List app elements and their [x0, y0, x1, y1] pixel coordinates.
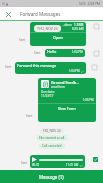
- staticText: Eko started a call: [39, 136, 65, 140]
- button[interactable]: Forward this message: [15, 62, 86, 74]
- staticText: Sent: [26, 114, 33, 118]
- staticText: View Form: [58, 106, 76, 111]
- staticText: 1.9 KB: [74, 23, 84, 27]
- staticText: Call canceled: [42, 144, 62, 148]
- staticText: …docx: [62, 23, 72, 27]
- staticText: General Feedb…: [51, 80, 79, 85]
- staticText: Sent: [19, 38, 26, 42]
- staticText: Due date:: [41, 90, 55, 94]
- button[interactable]: Select message: [93, 157, 98, 162]
- button[interactable]: Select message: [94, 51, 99, 56]
- staticText: 00:32: [32, 163, 40, 167]
- staticText: Sent: [5, 65, 12, 69]
- staticText: FRI, NOV 24: [43, 129, 61, 133]
- staticText: 1:04 PM: [72, 50, 83, 54]
- staticText: Sent: [34, 51, 41, 55]
- staticText: 1:04 PM: [69, 69, 80, 73]
- staticText: 11/23/17: [41, 94, 54, 98]
- staticText: 55% 2:58 PM: [79, 1, 101, 6]
- button[interactable]: Open: [30, 33, 86, 42]
- staticText: Forward this message: [17, 63, 57, 68]
- staticText: Sent: [21, 161, 28, 165]
- staticText: Open: [53, 35, 63, 40]
- staticText: send form: [51, 85, 65, 89]
- button[interactable]: Hello: [45, 49, 85, 57]
- staticText: 8:29 AM: [72, 27, 84, 31]
- staticText: Hello: [47, 49, 57, 54]
- staticText: 11:31 AM: [66, 163, 79, 167]
- button[interactable]: …docx: [30, 22, 86, 46]
- button[interactable]: 00:32: [30, 155, 85, 168]
- button[interactable]: Select message: [92, 65, 97, 70]
- staticText: ✉ ▲: [2, 1, 9, 6]
- staticText: 1:06 PM: [83, 98, 94, 102]
- staticText: THU, NOV 23: [37, 26, 58, 31]
- button[interactable]: General Feedb…: [38, 78, 96, 122]
- staticText: Message (1): [39, 174, 64, 180]
- button[interactable]: Select message: [94, 24, 99, 29]
- button[interactable]: Message (1): [0, 170, 103, 183]
- button[interactable]: Close selection: [3, 9, 13, 19]
- button[interactable]: View Form: [38, 104, 96, 112]
- staticText: Forward Messages: [20, 11, 61, 17]
